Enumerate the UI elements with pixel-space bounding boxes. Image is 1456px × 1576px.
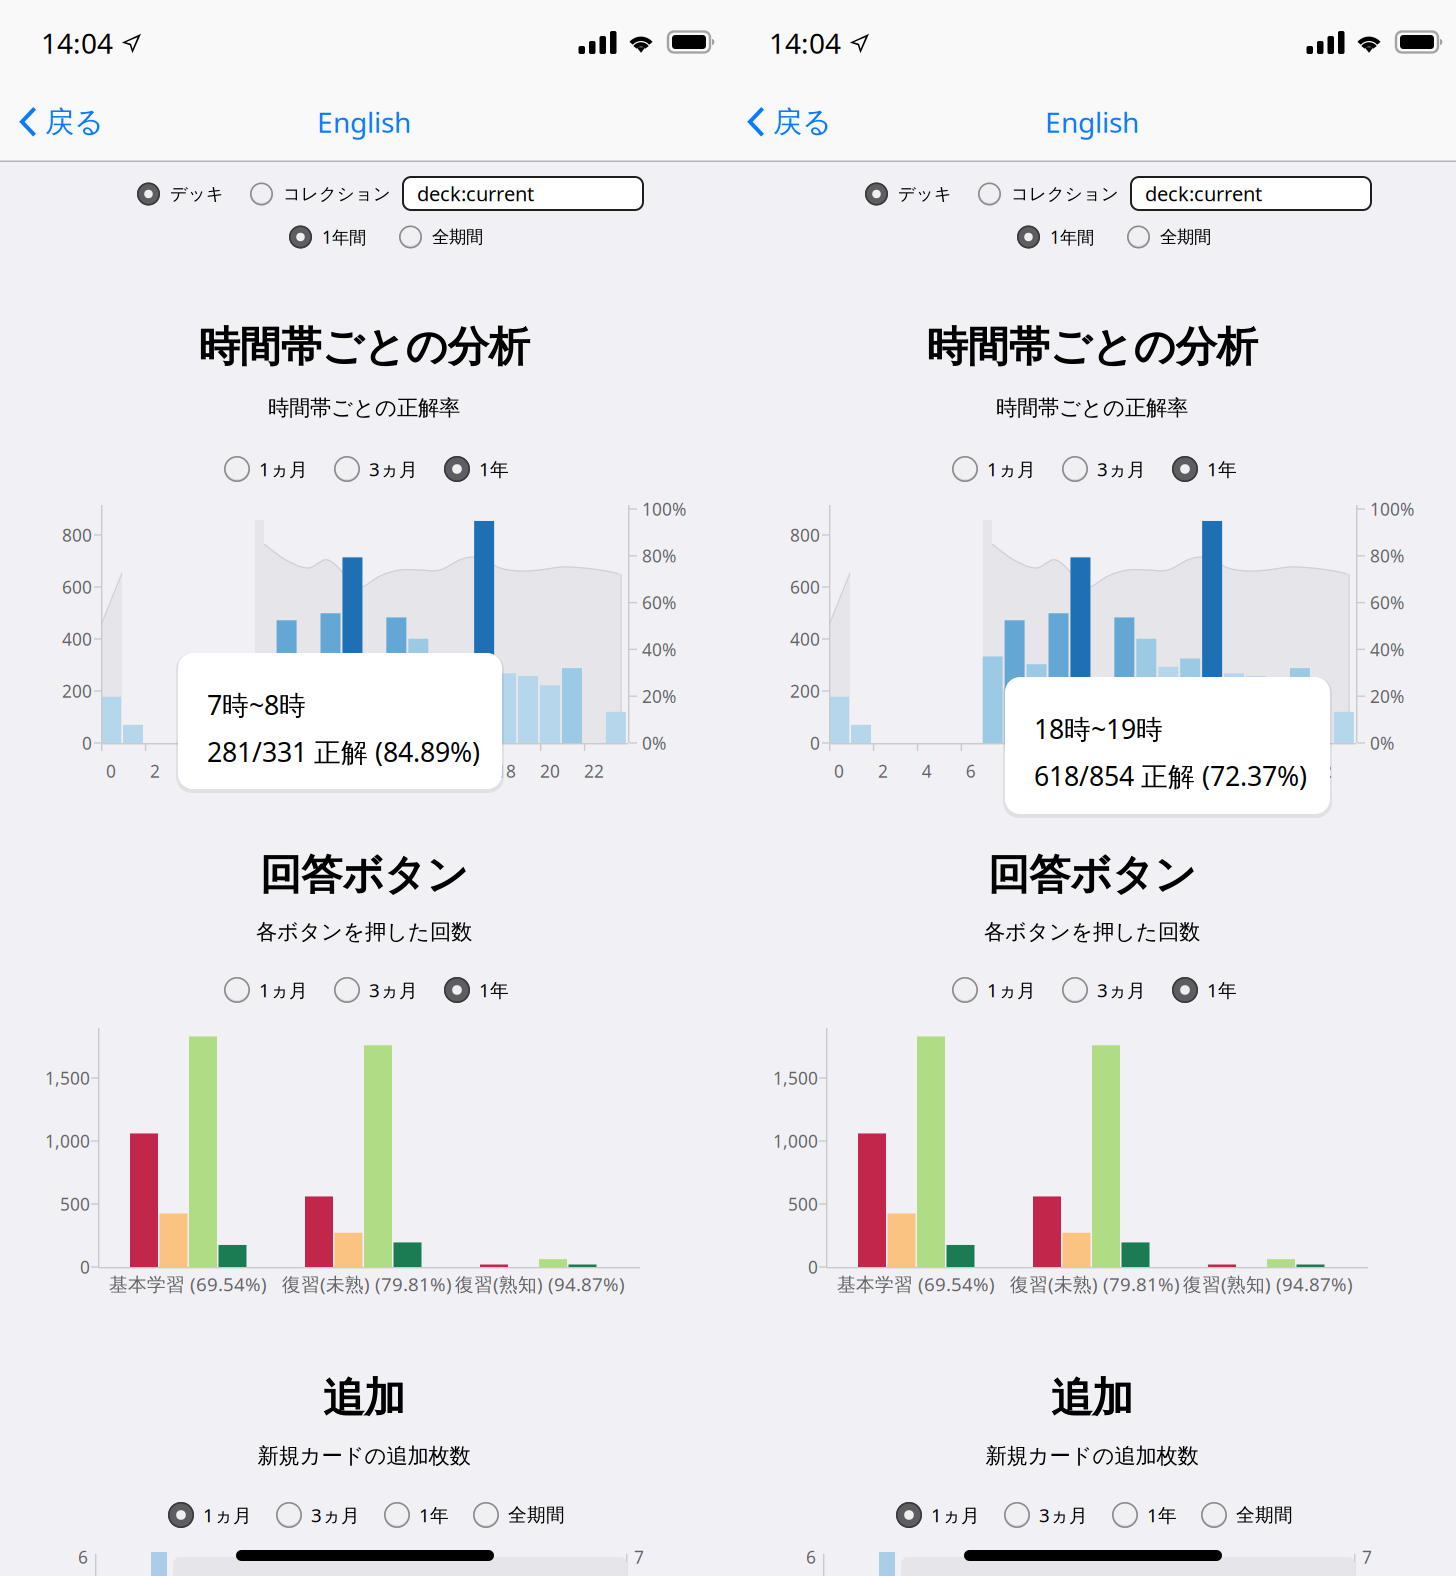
staticText: 22 bbox=[1312, 759, 1332, 782]
staticText: 1年間 bbox=[322, 225, 366, 248]
staticText: 回答ボタン bbox=[260, 850, 468, 900]
button[interactable]: コレクション bbox=[250, 182, 391, 205]
button[interactable]: Search query: deck:current bbox=[1131, 177, 1371, 210]
button[interactable]: 1年 bbox=[384, 1502, 449, 1528]
staticText: 3ヵ月 bbox=[1039, 1503, 1088, 1527]
staticText: 時間帯ごとの正解率 bbox=[268, 395, 460, 421]
staticText: 復習(熟知) (94.87%) bbox=[1183, 1272, 1353, 1296]
staticText: 復習(未熟) (79.81%) bbox=[1010, 1272, 1180, 1296]
staticText: 0 bbox=[106, 759, 116, 782]
button[interactable]: 全期間 bbox=[1127, 225, 1211, 248]
button[interactable]: 3ヵ月 bbox=[1004, 1502, 1088, 1528]
button[interactable]: 1年間 bbox=[1017, 225, 1094, 248]
staticText: 1ヵ月 bbox=[931, 1503, 980, 1527]
staticText: 各ボタンを押した回数 bbox=[984, 919, 1200, 945]
button[interactable]: English bbox=[264, 94, 464, 150]
button[interactable]: 1年間 bbox=[289, 225, 366, 248]
staticText: 8 bbox=[282, 759, 292, 782]
staticText: 6 bbox=[806, 1545, 816, 1568]
staticText: 戻る bbox=[45, 104, 104, 140]
button[interactable]: 1年 bbox=[444, 977, 509, 1003]
staticText: 100% bbox=[642, 497, 686, 520]
button[interactable]: 1ヵ月 bbox=[224, 977, 308, 1003]
staticText: 14 bbox=[1136, 759, 1156, 782]
staticText: 7 bbox=[634, 1545, 644, 1568]
staticText: 800 bbox=[790, 523, 820, 546]
staticText: 3ヵ月 bbox=[311, 1503, 360, 1527]
button[interactable]: English bbox=[992, 94, 1192, 150]
staticText: 40% bbox=[642, 638, 676, 661]
button[interactable]: 3ヵ月 bbox=[1062, 977, 1146, 1003]
button[interactable]: 戻る bbox=[16, 94, 216, 150]
staticText: 各ボタンを押した回数 bbox=[256, 919, 472, 945]
button[interactable]: 1ヵ月 bbox=[952, 456, 1036, 482]
staticText: 時間帯ごとの分析 bbox=[926, 322, 1257, 372]
staticText: 1年間 bbox=[1050, 225, 1094, 248]
button[interactable]: 3ヵ月 bbox=[334, 977, 418, 1003]
button[interactable]: Search query: deck:current bbox=[403, 177, 643, 210]
staticText: 16 bbox=[1180, 759, 1200, 782]
staticText: 4 bbox=[922, 759, 932, 782]
staticText: 281/331 正解 (84.89%) bbox=[207, 734, 480, 769]
staticText: 追加 bbox=[1051, 1373, 1133, 1423]
staticText: 10 bbox=[1048, 759, 1068, 782]
staticText: 14:04 bbox=[769, 24, 841, 62]
button[interactable]: 戻る bbox=[744, 94, 944, 150]
button[interactable]: 1ヵ月 bbox=[168, 1502, 252, 1528]
button[interactable]: デッキ bbox=[865, 182, 952, 205]
staticText: 7 bbox=[1362, 1545, 1372, 1568]
staticText: 復習(未熟) (79.81%) bbox=[282, 1272, 452, 1296]
staticText: 3ヵ月 bbox=[1097, 457, 1146, 481]
button[interactable]: 全期間 bbox=[399, 225, 483, 248]
staticText: デッキ bbox=[170, 183, 224, 205]
staticText: 1ヵ月 bbox=[259, 457, 308, 481]
staticText: English bbox=[1045, 103, 1139, 141]
button[interactable]: 3ヵ月 bbox=[276, 1502, 360, 1528]
staticText: 1ヵ月 bbox=[987, 978, 1036, 1002]
staticText: 時間帯ごとの分析 bbox=[198, 322, 529, 372]
staticText: 22 bbox=[584, 759, 604, 782]
staticText: コレクション bbox=[1011, 183, 1119, 205]
staticText: 500 bbox=[60, 1192, 90, 1215]
staticText: 全期間 bbox=[432, 226, 483, 248]
button[interactable]: 全期間 bbox=[473, 1502, 565, 1528]
staticText: 3ヵ月 bbox=[369, 457, 418, 481]
staticText: deck:current bbox=[417, 180, 534, 207]
staticText: 18時~19時 bbox=[1034, 711, 1163, 746]
staticText: 600 bbox=[62, 575, 92, 598]
staticText: 400 bbox=[790, 627, 820, 650]
button[interactable]: コレクション bbox=[978, 182, 1119, 205]
staticText: 復習(熟知) (94.87%) bbox=[455, 1272, 625, 1296]
staticText: 新規カードの追加枚数 bbox=[257, 1443, 470, 1469]
staticText: 1年 bbox=[1147, 1503, 1177, 1527]
staticText: 80% bbox=[642, 544, 676, 567]
staticText: 20% bbox=[1370, 685, 1404, 708]
staticText: 0% bbox=[642, 731, 666, 754]
staticText: 全期間 bbox=[1160, 226, 1211, 248]
button[interactable]: 1年 bbox=[1112, 1502, 1177, 1528]
staticText: deck:current bbox=[1145, 180, 1262, 207]
staticText: 1,500 bbox=[45, 1066, 90, 1089]
button[interactable]: 1年 bbox=[444, 456, 509, 482]
button[interactable]: 1ヵ月 bbox=[224, 456, 308, 482]
button[interactable]: デッキ bbox=[137, 182, 224, 205]
staticText: 0 bbox=[808, 1255, 818, 1278]
staticText: 60% bbox=[1370, 591, 1404, 614]
button[interactable]: 1ヵ月 bbox=[896, 1502, 980, 1528]
button[interactable]: 3ヵ月 bbox=[1062, 456, 1146, 482]
button[interactable]: 3ヵ月 bbox=[334, 456, 418, 482]
staticText: 基本学習 (69.54%) bbox=[109, 1272, 267, 1296]
staticText: 12 bbox=[364, 759, 384, 782]
button[interactable]: 1ヵ月 bbox=[952, 977, 1036, 1003]
staticText: 1ヵ月 bbox=[987, 457, 1036, 481]
staticText: 40% bbox=[1370, 638, 1404, 661]
staticText: 12 bbox=[1092, 759, 1112, 782]
staticText: 2 bbox=[150, 759, 160, 782]
button[interactable]: 1年 bbox=[1172, 977, 1237, 1003]
button[interactable]: 全期間 bbox=[1201, 1502, 1293, 1528]
staticText: 500 bbox=[788, 1192, 818, 1215]
button[interactable]: 1年 bbox=[1172, 456, 1237, 482]
staticText: 2 bbox=[878, 759, 888, 782]
staticText: 200 bbox=[62, 679, 92, 702]
